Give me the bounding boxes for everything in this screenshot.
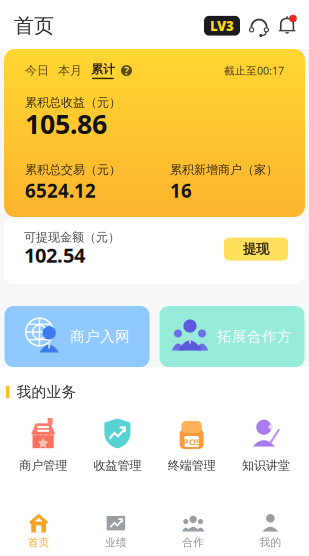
button[interactable]: 合作 xyxy=(154,505,232,556)
staticText: 105.86 xyxy=(25,106,107,141)
staticText: 业绩 xyxy=(105,536,127,549)
staticText: 102.54 xyxy=(24,242,85,268)
staticText: 16 xyxy=(170,178,192,203)
staticText: 截止至00:17 xyxy=(224,63,284,78)
button[interactable]: 知识讲堂 xyxy=(229,417,303,473)
staticText: ? xyxy=(124,63,129,78)
staticText: 可提现金额（元） xyxy=(24,230,120,245)
staticText: 6524.12 xyxy=(25,178,96,203)
staticText: 首页 xyxy=(14,13,54,38)
button[interactable]: 商户入网 xyxy=(4,306,149,367)
button[interactable]: 今日 xyxy=(25,63,49,78)
staticText: 今日 xyxy=(25,63,49,78)
staticText: 我的业务 xyxy=(16,383,76,401)
button[interactable]: 我的 xyxy=(232,505,309,556)
staticText: 拓展合作方 xyxy=(217,327,292,345)
staticText: 本月 xyxy=(58,63,82,78)
button[interactable]: 首页 xyxy=(0,505,77,556)
button[interactable]: 客服 xyxy=(249,14,269,38)
staticText: 终端管理 xyxy=(168,458,216,473)
button[interactable]: LV3 xyxy=(204,16,240,36)
staticText: 收益管理 xyxy=(93,458,141,473)
button[interactable]: 通知 xyxy=(277,14,297,38)
button[interactable]: 业绩 xyxy=(77,505,154,556)
staticText: 商户入网 xyxy=(70,327,130,345)
staticText: LV3 xyxy=(210,17,234,35)
staticText: 我的 xyxy=(259,536,281,549)
button[interactable]: 提现 xyxy=(224,237,288,260)
staticText: 累计 xyxy=(91,62,115,77)
staticText: 商户管理 xyxy=(19,458,67,473)
staticText: POS xyxy=(183,435,201,448)
button[interactable]: 说明 xyxy=(121,63,132,78)
staticText: 提现 xyxy=(243,241,269,257)
staticText: 累积总交易（元） xyxy=(25,162,121,177)
button[interactable]: 本月 xyxy=(58,63,82,78)
staticText: 首页 xyxy=(28,536,50,549)
button[interactable]: 收益管理 xyxy=(80,417,154,473)
staticText: 累积总收益（元） xyxy=(25,95,121,110)
button[interactable]: 商户管理 xyxy=(6,417,80,473)
button[interactable]: 拓展合作方 xyxy=(159,306,304,367)
staticText: 合作 xyxy=(182,536,204,549)
staticText: 累积新增商户（家） xyxy=(170,162,278,177)
staticText: 知识讲堂 xyxy=(242,458,290,473)
button[interactable]: POS xyxy=(154,417,229,473)
button[interactable]: 累计 xyxy=(91,62,115,79)
